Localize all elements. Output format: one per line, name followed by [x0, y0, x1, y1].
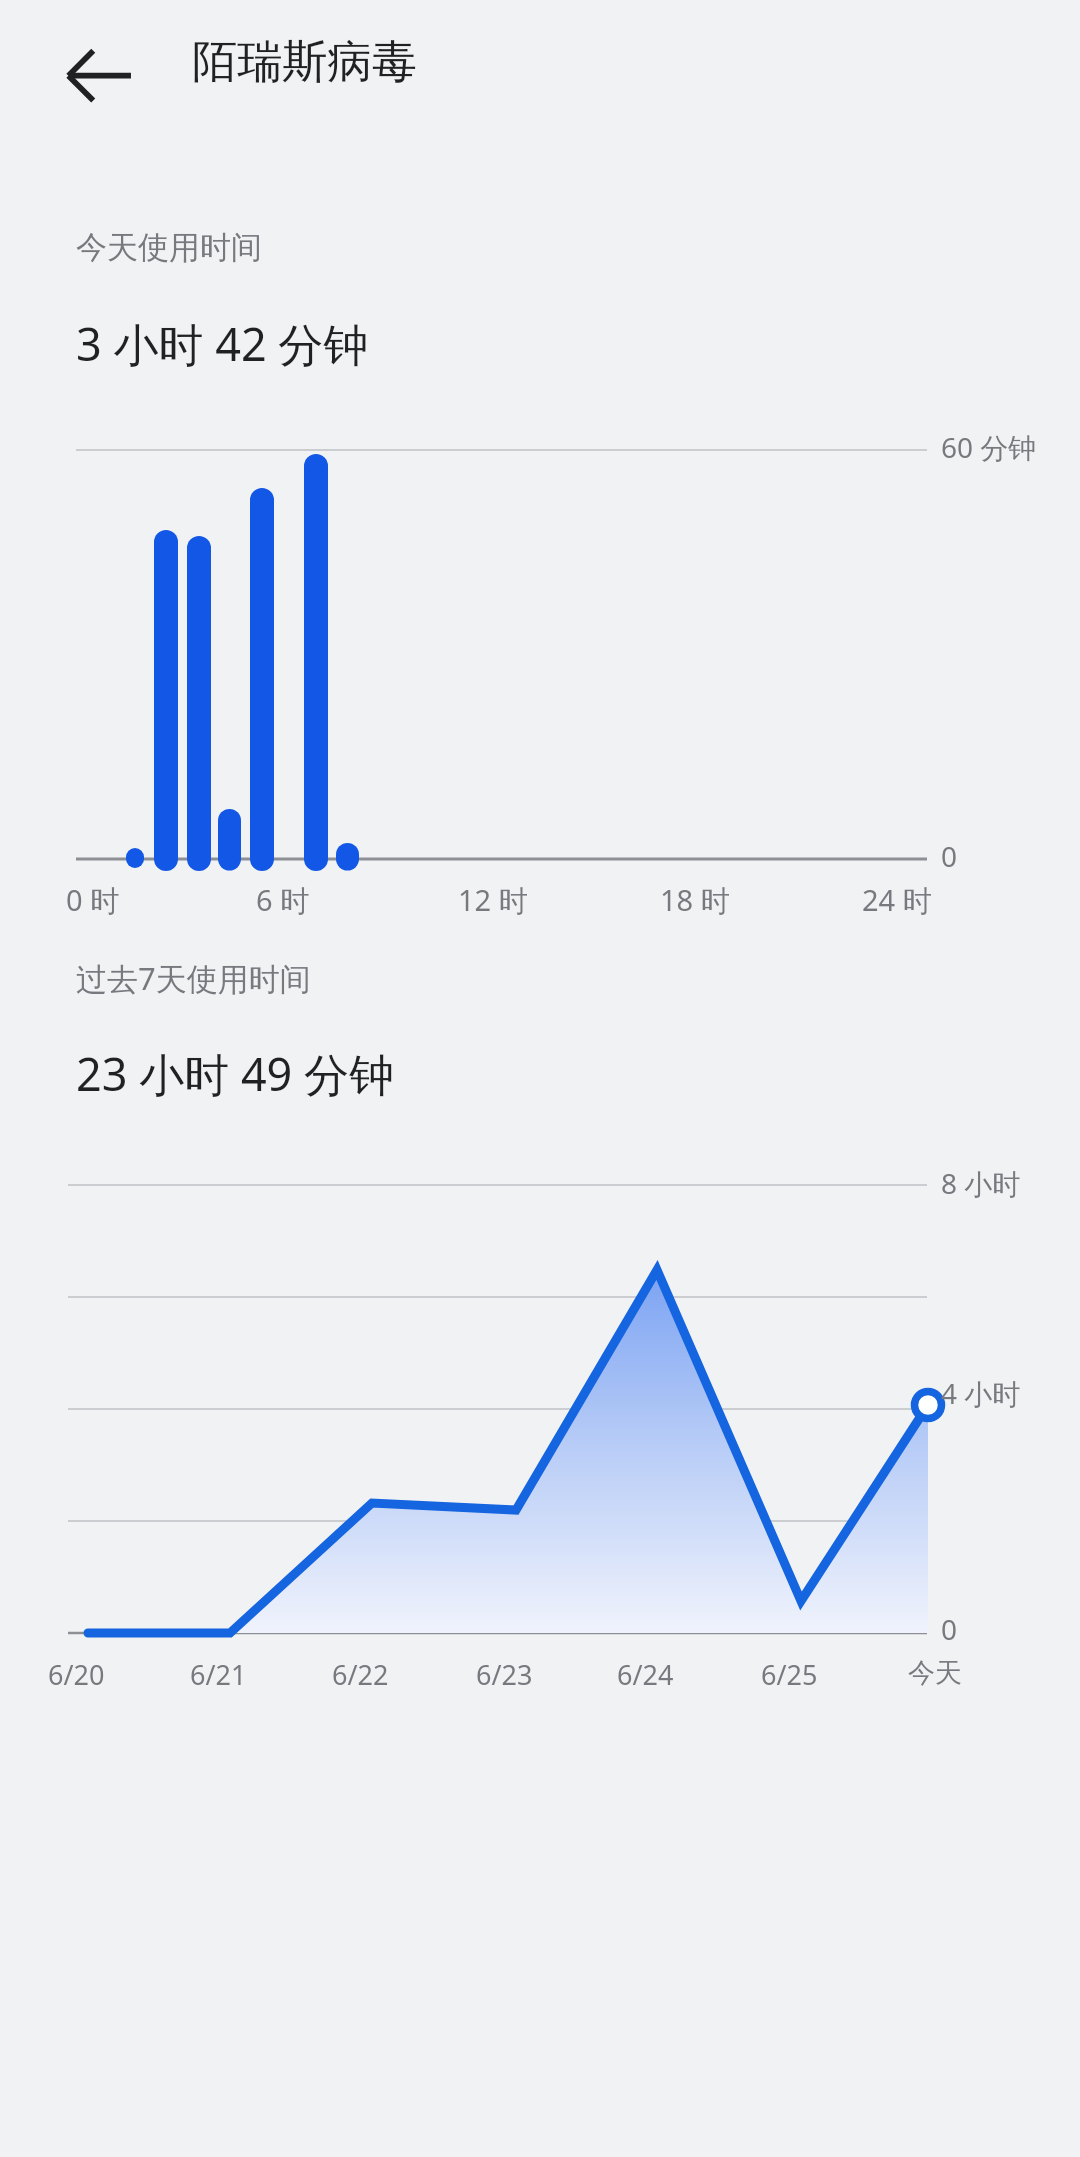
staticText: 60 分钟: [941, 428, 1037, 466]
staticText: 0 时: [66, 880, 120, 920]
staticText: 23 小时 49 分钟: [76, 1043, 395, 1104]
staticText: 今天使用时间: [76, 228, 262, 267]
staticText: 6 时: [256, 880, 310, 920]
staticText: 4 小时: [941, 1374, 1021, 1412]
staticText: 3 小时 42 分钟: [76, 313, 369, 374]
staticText: 12 时: [458, 880, 528, 920]
button[interactable]: Back: [50, 26, 142, 118]
staticText: 今天: [908, 1656, 962, 1690]
staticText: 24 时: [862, 880, 932, 920]
staticText: 6/21: [190, 1656, 247, 1693]
staticText: 0: [941, 837, 958, 875]
staticText: 6/23: [476, 1656, 533, 1693]
staticText: 18 时: [660, 880, 730, 920]
staticText: 0: [941, 1610, 958, 1648]
staticText: 陌瑞斯病毒: [192, 34, 417, 91]
staticText: 6/20: [48, 1656, 105, 1693]
staticText: 6/24: [617, 1656, 674, 1693]
staticText: 6/25: [761, 1656, 818, 1693]
staticText: 8 小时: [941, 1164, 1021, 1202]
staticText: 6/22: [332, 1656, 389, 1693]
staticText: 过去7天使用时间: [76, 957, 311, 999]
